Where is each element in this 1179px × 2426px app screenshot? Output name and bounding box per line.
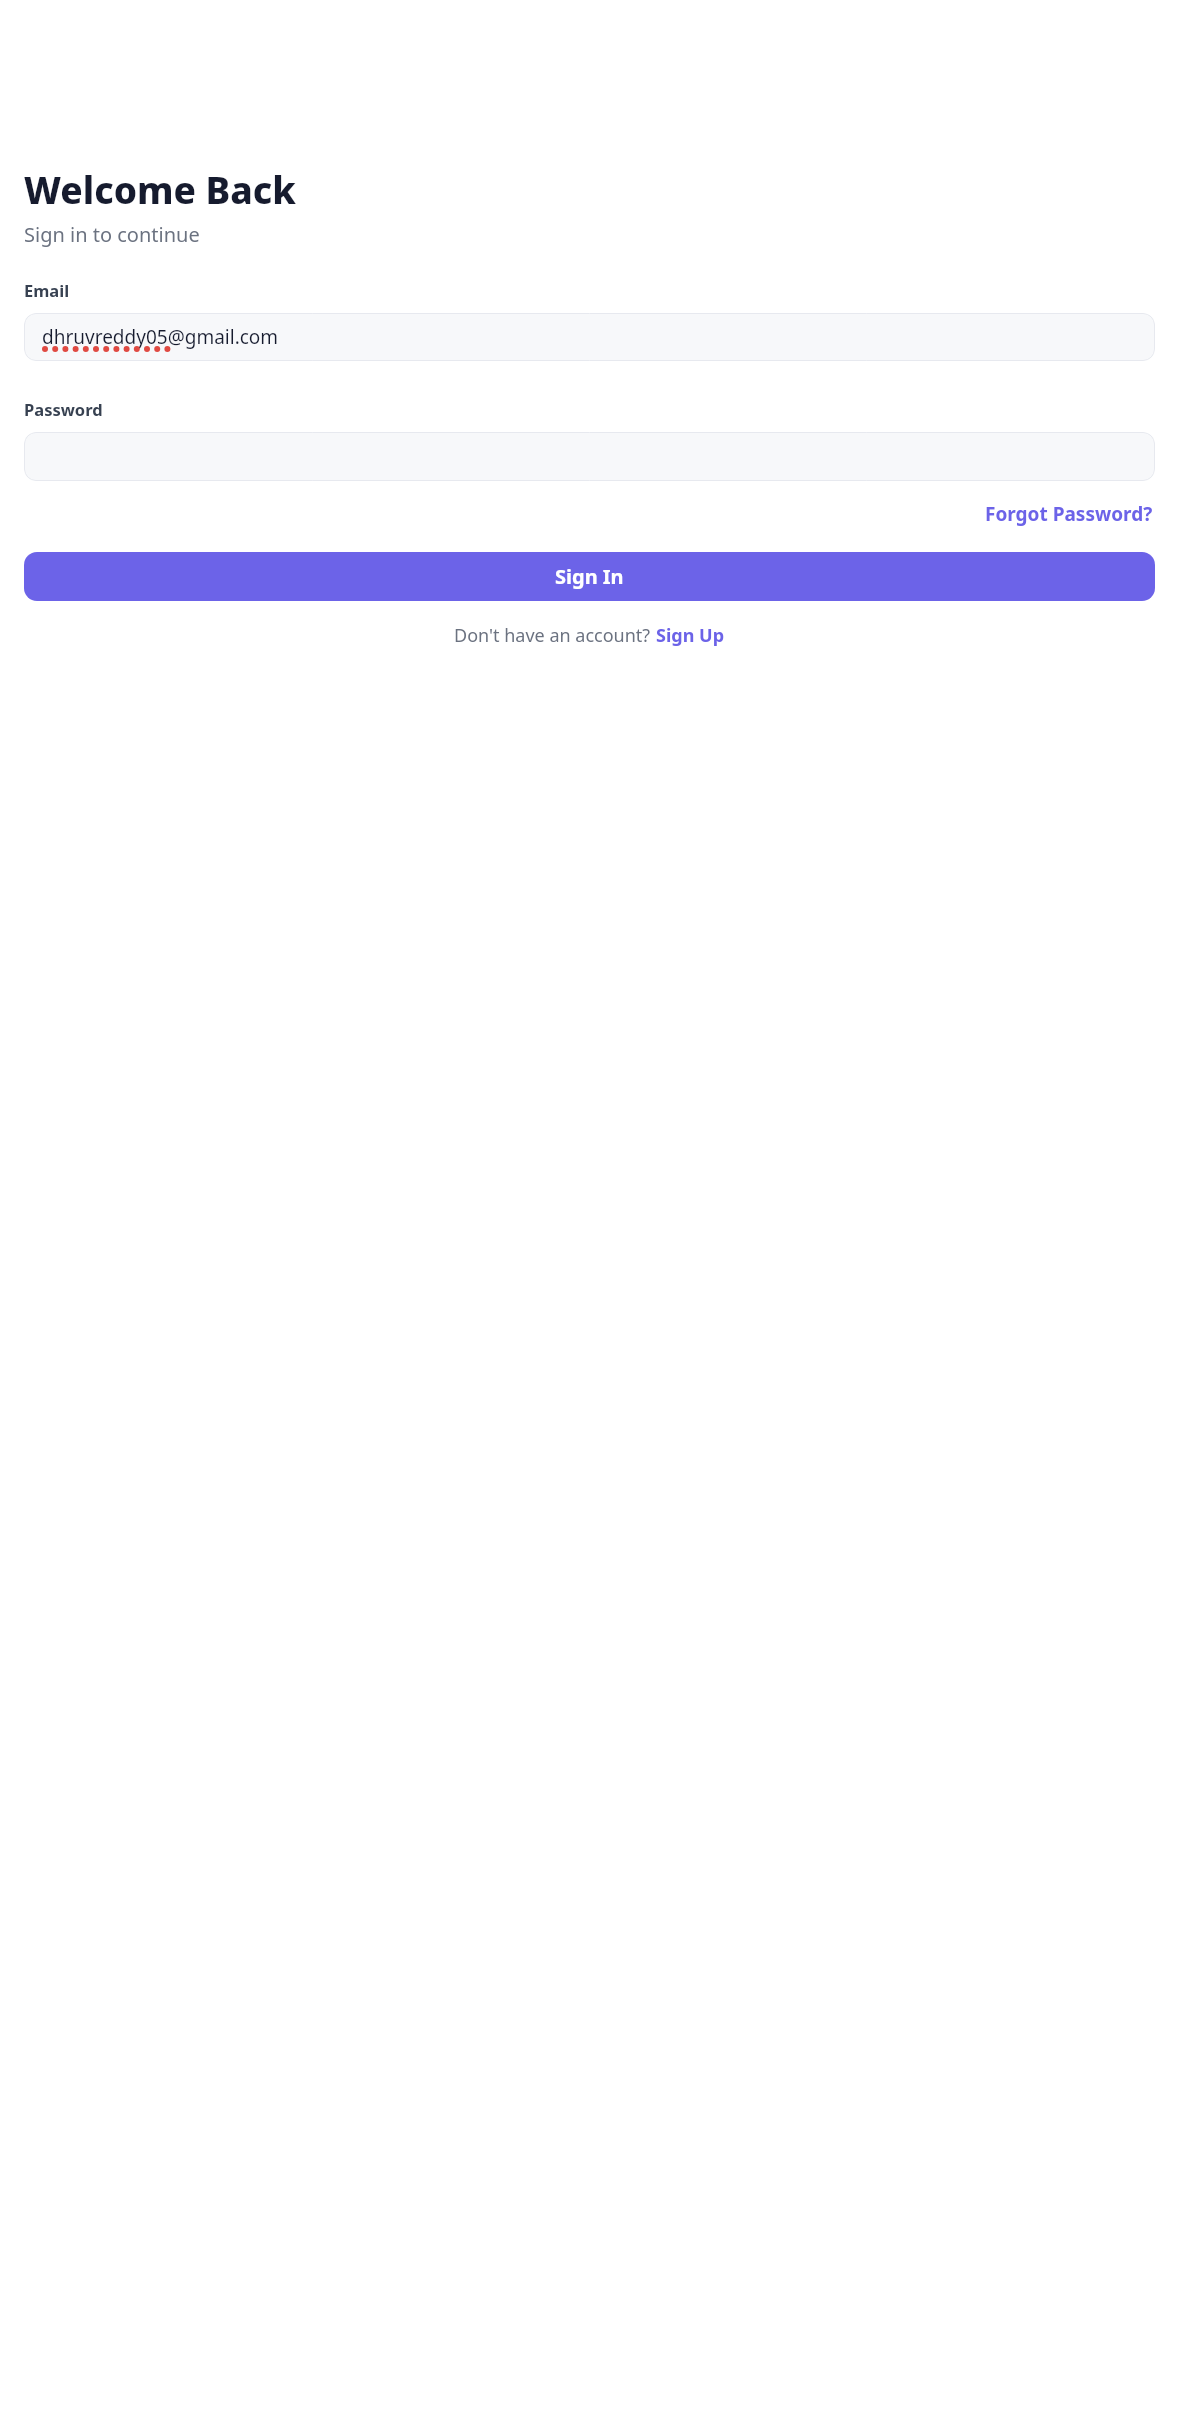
staticText: Don't have an account?	[454, 623, 655, 648]
button[interactable]: Forgot Password?	[983, 497, 1155, 531]
button[interactable]: Sign In	[24, 552, 1155, 601]
staticText: Sign in to continue	[24, 221, 200, 248]
staticText: Sign In	[555, 563, 624, 590]
staticText: Password	[24, 398, 103, 420]
staticText: Sign Up	[656, 623, 725, 648]
staticText: dhruvreddy05@gmail.com	[42, 324, 279, 350]
staticText: Email	[24, 279, 70, 301]
staticText: Forgot Password?	[985, 501, 1153, 527]
button[interactable]: dhruvreddy05@gmail.com	[24, 313, 1155, 361]
staticText: Welcome Back	[24, 164, 296, 214]
button[interactable]: Password input	[24, 432, 1155, 481]
button[interactable]: Sign Up	[655, 620, 726, 651]
